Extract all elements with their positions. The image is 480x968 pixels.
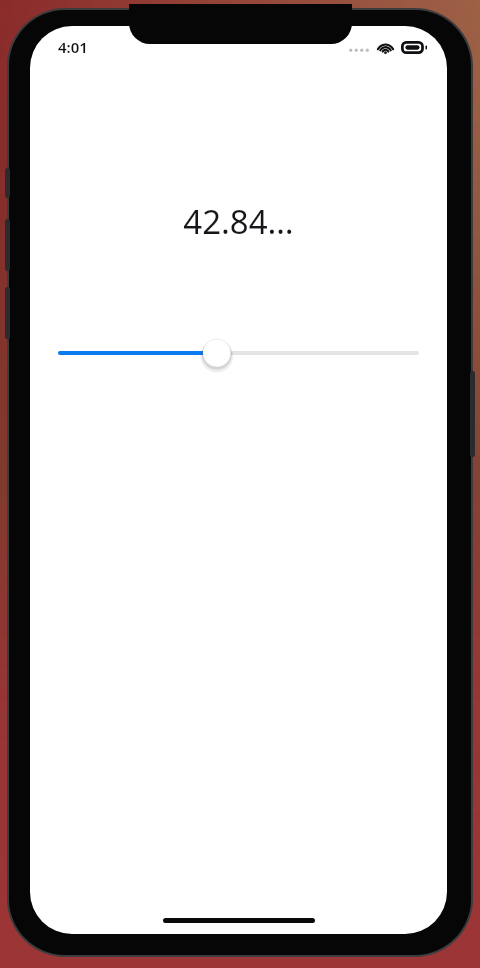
other: Battery full xyxy=(401,41,427,54)
other: Wi-Fi xyxy=(377,41,394,54)
staticText: 42.84… xyxy=(183,199,294,244)
staticText: 4:01 xyxy=(58,37,88,57)
button[interactable] xyxy=(30,331,447,375)
other: Cellular signal xyxy=(348,43,370,53)
